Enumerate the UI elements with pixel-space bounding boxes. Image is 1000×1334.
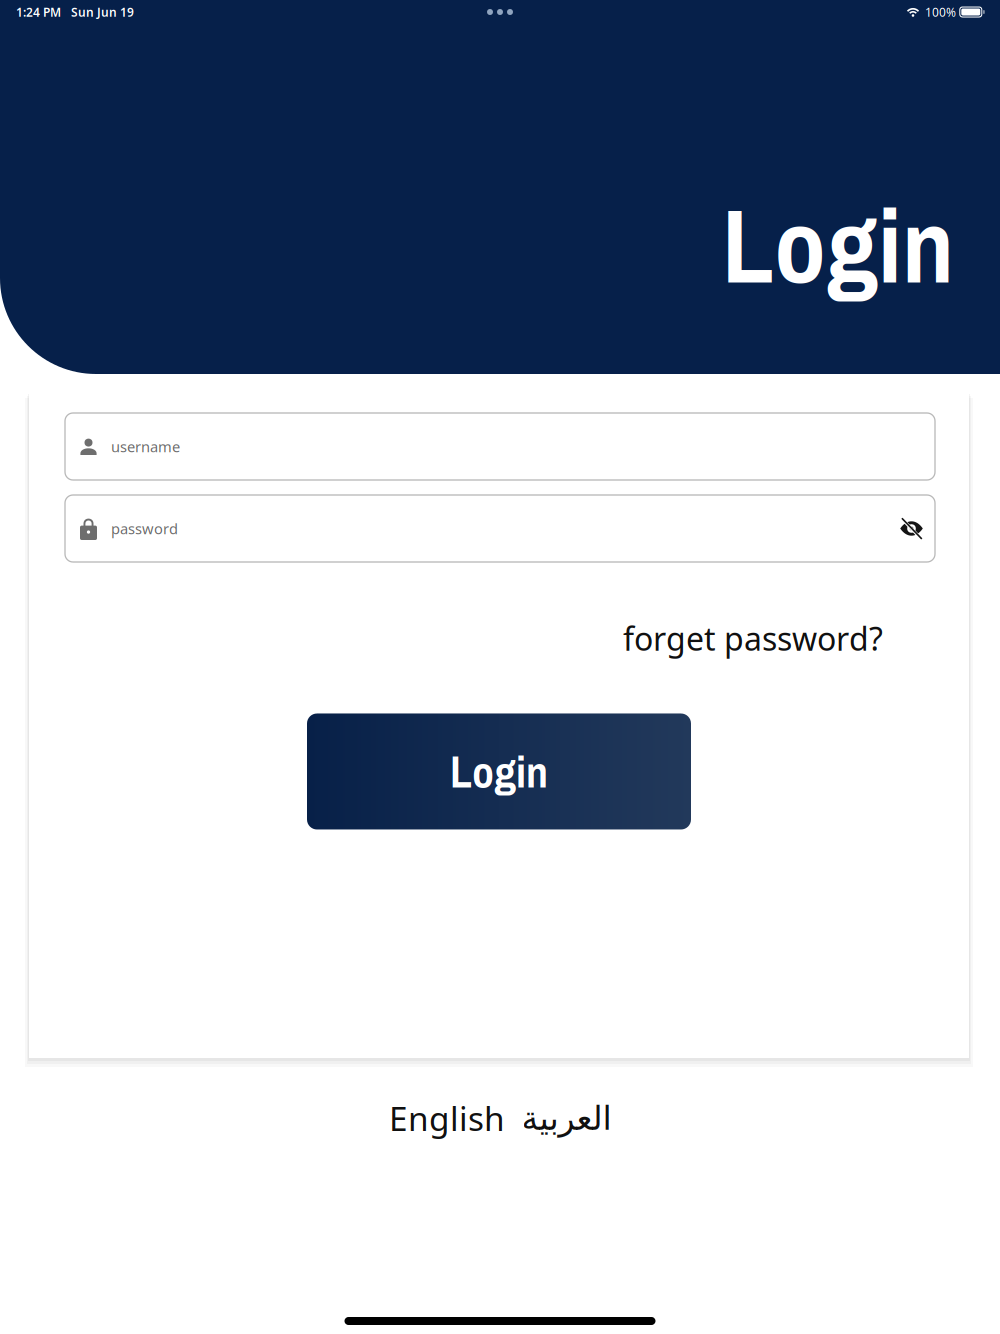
button[interactable]: Login — [307, 713, 691, 829]
button[interactable]: العربية — [505, 1099, 611, 1137]
staticText: Login — [450, 742, 548, 801]
staticText: password — [111, 519, 178, 538]
button[interactable]: Show password — [900, 517, 935, 540]
button[interactable]: English — [389, 1096, 505, 1140]
staticText: 1:24 PM — [16, 4, 61, 20]
staticText: Login — [722, 175, 954, 315]
staticText: 100% — [925, 4, 956, 20]
staticText: Sun Jun 19 — [71, 4, 134, 20]
staticText: forget password? — [623, 617, 883, 659]
button[interactable]: forget password? — [623, 617, 883, 659]
staticText: English — [389, 1096, 505, 1140]
staticText: العربية — [521, 1099, 611, 1137]
staticText: username — [111, 437, 180, 456]
